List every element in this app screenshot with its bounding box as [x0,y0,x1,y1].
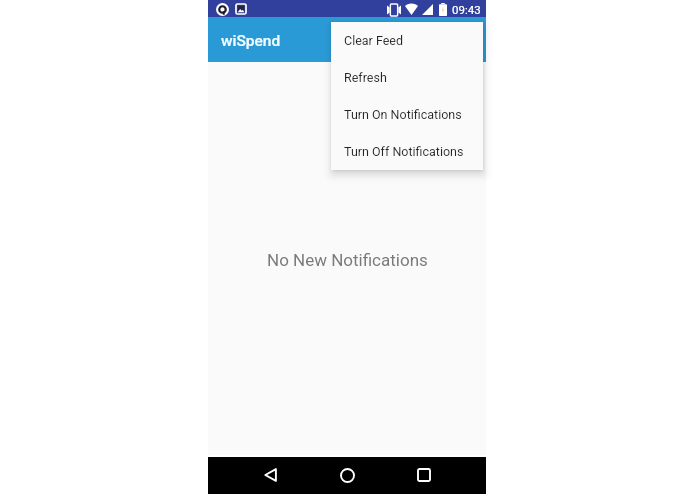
button[interactable]: Turn On Notifications [331,96,483,133]
button[interactable]: Turn Off Notifications [331,133,483,170]
staticText: Refresh [344,70,387,85]
staticText: Turn Off Notifications [344,144,464,159]
button[interactable]: Home [331,459,363,491]
staticText: No New Notifications [267,250,428,270]
staticText: 09:43 [452,3,481,16]
button[interactable]: Refresh [331,59,483,96]
button[interactable]: Back [254,459,286,491]
staticText: Clear Feed [344,33,404,48]
staticText: Turn On Notifications [344,107,462,122]
button[interactable]: Clear Feed [331,22,483,59]
staticText: wiSpend [221,32,281,50]
button[interactable]: Recent apps [408,459,440,491]
